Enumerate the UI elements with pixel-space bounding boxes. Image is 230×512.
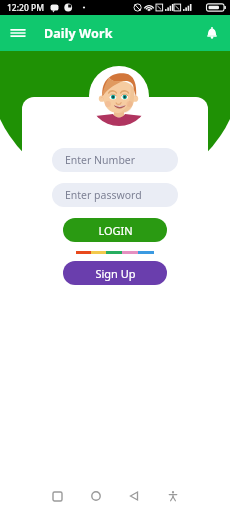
button[interactable]: Enter Number bbox=[52, 148, 178, 172]
button[interactable]: LOGIN bbox=[63, 218, 167, 242]
button[interactable]: Home bbox=[85, 485, 107, 507]
staticText: 12:20 PM bbox=[7, 2, 44, 14]
button[interactable]: Sign Up bbox=[63, 261, 167, 285]
button[interactable]: Notifications bbox=[194, 15, 230, 51]
button[interactable]: Recent apps bbox=[46, 485, 68, 507]
staticText: Enter Number bbox=[65, 153, 136, 167]
staticText: LOGIN bbox=[98, 223, 133, 238]
button[interactable]: Enter password bbox=[52, 183, 178, 207]
staticText: Sign Up bbox=[95, 266, 136, 281]
staticText: Enter password bbox=[65, 188, 142, 202]
button[interactable]: Open navigation menu bbox=[0, 15, 36, 51]
button[interactable]: Back bbox=[123, 485, 145, 507]
staticText: Daily Work bbox=[44, 25, 113, 42]
button[interactable]: Accessibility bbox=[162, 485, 184, 507]
